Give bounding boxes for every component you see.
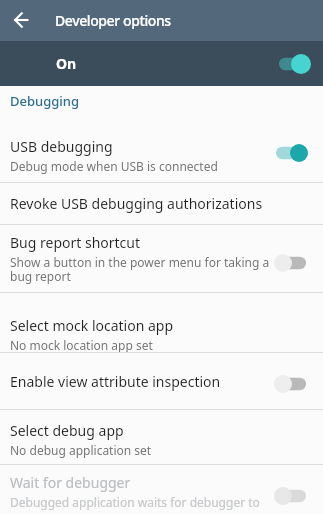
button[interactable] xyxy=(277,54,311,74)
button[interactable]: Enable view attribute inspection xyxy=(0,353,323,409)
button[interactable] xyxy=(11,10,31,30)
staticText: Debugged application waits for debugger … xyxy=(10,494,260,510)
button[interactable]: Bug report shortcut xyxy=(0,225,323,292)
button[interactable]: On xyxy=(0,41,323,86)
button[interactable] xyxy=(274,253,308,273)
staticText: No debug application set xyxy=(10,442,152,458)
staticText: Developer options xyxy=(55,11,171,30)
button[interactable] xyxy=(274,143,308,163)
staticText: Debug mode when USB is connected xyxy=(10,158,218,174)
staticText: Wait for debugger xyxy=(10,473,131,492)
button[interactable] xyxy=(274,486,308,506)
staticText: Enable view attribute inspection xyxy=(10,372,221,391)
button[interactable]: Wait for debugger xyxy=(0,465,323,514)
staticText: Select mock location app xyxy=(10,316,174,335)
button[interactable]: Revoke USB debugging authorizations xyxy=(0,183,323,224)
staticText: Debugging xyxy=(10,92,80,110)
button[interactable]: Select mock location app xyxy=(0,293,323,352)
staticText: On xyxy=(56,54,77,73)
button[interactable] xyxy=(274,374,308,394)
staticText: USB debugging xyxy=(10,137,113,156)
staticText: Revoke USB debugging authorizations xyxy=(10,194,263,213)
staticText: Bug report shortcut xyxy=(10,233,141,252)
button[interactable]: Select debug app xyxy=(0,410,323,464)
staticText: Show a button in the power menu for taki… xyxy=(10,254,270,285)
button[interactable]: USB debugging xyxy=(0,121,323,182)
staticText: Select debug app xyxy=(10,421,124,440)
staticText: No mock location app set xyxy=(10,337,153,353)
